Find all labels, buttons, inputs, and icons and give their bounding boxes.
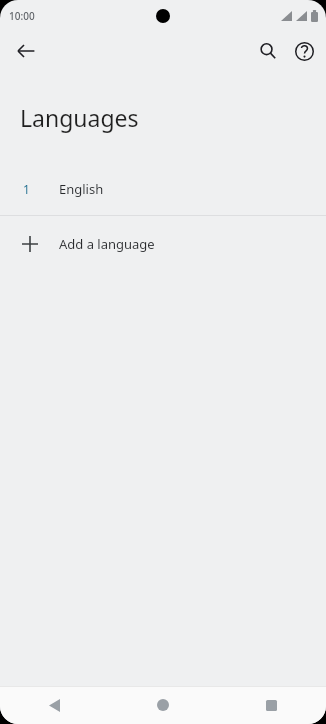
button[interactable]: Back [8,33,44,69]
button[interactable]: Recent apps [217,686,326,724]
button[interactable]: Add a language [0,216,326,272]
button[interactable]: Back [0,686,108,724]
button[interactable]: Home [108,686,217,724]
staticText: 10:00 [9,9,35,23]
button[interactable]: 1 [0,163,326,215]
button[interactable]: Help [286,33,322,69]
button[interactable]: Search [250,33,286,69]
staticText: Add a language [59,235,155,253]
staticText: Languages [20,102,139,133]
staticText: English [59,180,104,198]
staticText: 1 [23,181,30,197]
